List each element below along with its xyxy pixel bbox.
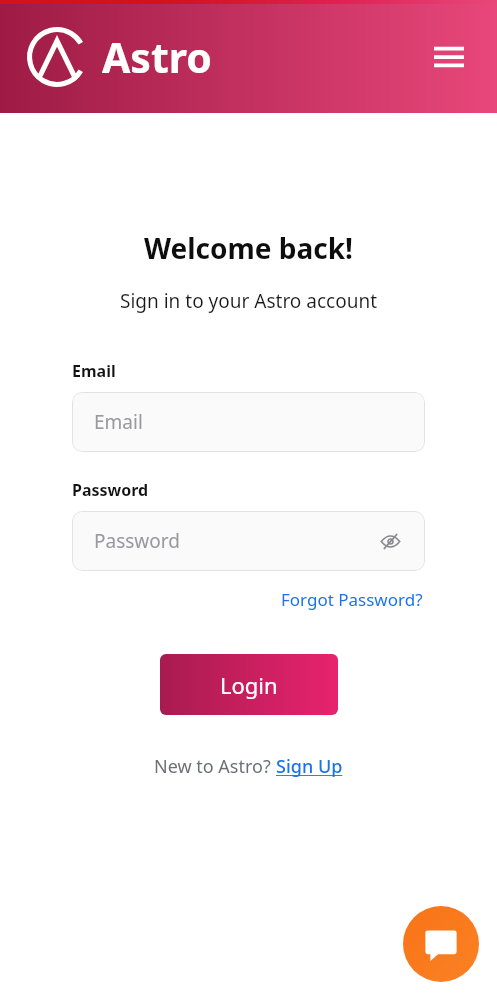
staticText: Forgot Password? bbox=[281, 588, 423, 611]
button[interactable]: Show password bbox=[377, 528, 403, 554]
staticText: Welcome back! bbox=[144, 229, 353, 267]
staticText: Sign Up bbox=[276, 754, 343, 779]
staticText: Password bbox=[94, 528, 180, 554]
button[interactable]: Sign Up bbox=[276, 754, 343, 779]
staticText: Astro bbox=[102, 29, 212, 85]
button[interactable]: Open chat bbox=[403, 906, 479, 982]
staticText: Email bbox=[94, 409, 143, 435]
staticText: Password bbox=[72, 479, 149, 501]
staticText: Sign in to your Astro account bbox=[120, 288, 378, 314]
button[interactable]: Login bbox=[160, 654, 338, 715]
button[interactable]: Password bbox=[72, 511, 425, 571]
staticText: New to Astro? bbox=[154, 754, 276, 779]
staticText: Login bbox=[220, 670, 278, 700]
button[interactable]: Menu bbox=[427, 35, 471, 79]
button[interactable]: Astro logo bbox=[26, 26, 88, 88]
staticText: Email bbox=[72, 360, 116, 382]
button[interactable]: Forgot Password? bbox=[279, 586, 425, 613]
button[interactable]: Email bbox=[72, 392, 425, 452]
